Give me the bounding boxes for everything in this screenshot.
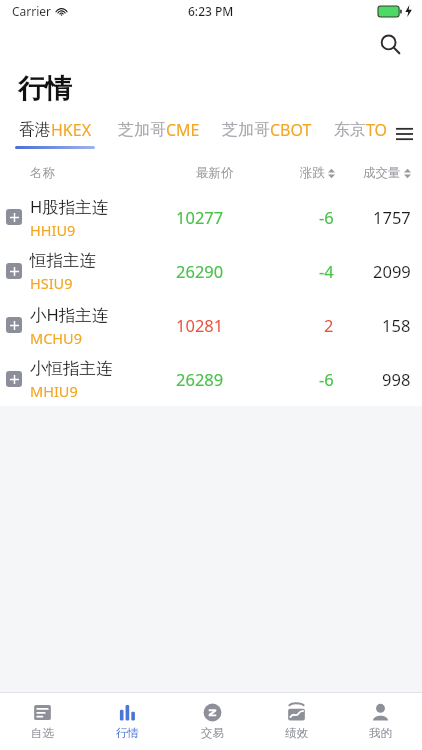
button[interactable]: Add MHIU9 to watchlist	[6, 371, 22, 387]
button[interactable]: 交易	[170, 693, 254, 750]
staticText: CBOT	[270, 119, 312, 141]
staticText: 998	[382, 368, 411, 390]
button[interactable]: Add HHIU9 to watchlist	[0, 190, 422, 244]
button[interactable]: 东京	[334, 119, 388, 149]
staticText: 最新价	[196, 165, 234, 181]
staticText: 绩效	[285, 726, 308, 740]
staticText: 6:23 PM	[188, 3, 234, 19]
staticText: 10277	[176, 206, 224, 228]
staticText: MCHU9	[30, 328, 82, 348]
staticText: 香港	[19, 120, 51, 140]
staticText: 涨跌	[300, 165, 325, 181]
staticText: CME	[166, 119, 200, 141]
staticText: TO	[366, 119, 388, 141]
staticText: 交易	[201, 726, 224, 740]
staticText: 1757	[373, 206, 411, 228]
staticText: 小恒指主连	[30, 358, 113, 379]
staticText: 2099	[373, 260, 411, 282]
staticText: 东京	[334, 120, 366, 140]
button[interactable]: Add MCHU9 to watchlist	[6, 317, 22, 333]
staticText: H股指主连	[30, 195, 109, 218]
staticText: -6	[319, 368, 334, 390]
staticText: 恒指主连	[30, 250, 96, 271]
staticText: MHIU9	[30, 381, 78, 401]
staticText: HSIU9	[30, 273, 73, 293]
staticText: 成交量	[363, 165, 401, 181]
staticText: 2	[324, 314, 334, 336]
button[interactable]: 绩效	[254, 693, 338, 750]
staticText: 158	[382, 314, 411, 336]
staticText: 26289	[176, 368, 224, 390]
button[interactable]: More exchanges	[386, 112, 422, 156]
staticText: HHIU9	[30, 220, 76, 240]
button[interactable]: 行情	[85, 693, 170, 750]
button[interactable]: Search	[372, 26, 408, 62]
staticText: -6	[319, 206, 334, 228]
staticText: HKEX	[51, 119, 92, 141]
button[interactable]: 芝加哥	[118, 119, 200, 149]
staticText: -4	[319, 260, 334, 282]
button[interactable]: Add MCHU9 to watchlist	[0, 298, 422, 352]
button[interactable]: 芝加哥	[222, 119, 312, 149]
button[interactable]: 自选	[0, 693, 85, 750]
staticText: 26290	[176, 260, 224, 282]
staticText: 我的	[369, 726, 392, 740]
staticText: 行情	[18, 72, 72, 106]
staticText: Carrier	[12, 3, 52, 19]
staticText: 10281	[176, 314, 224, 336]
staticText: 名称	[30, 165, 55, 181]
button[interactable]: Add HHIU9 to watchlist	[6, 209, 22, 225]
staticText: 芝加哥	[118, 120, 166, 140]
button[interactable]: Add HSIU9 to watchlist	[6, 263, 22, 279]
button[interactable]: 我的	[338, 693, 422, 750]
button[interactable]: Add MHIU9 to watchlist	[0, 352, 422, 406]
button[interactable]: Add HSIU9 to watchlist	[0, 244, 422, 298]
staticText: 行情	[116, 726, 139, 740]
button[interactable]: 香港	[15, 119, 95, 149]
staticText: 自选	[31, 726, 54, 740]
staticText: 芝加哥	[222, 120, 270, 140]
staticText: 小H指主连	[30, 303, 109, 326]
